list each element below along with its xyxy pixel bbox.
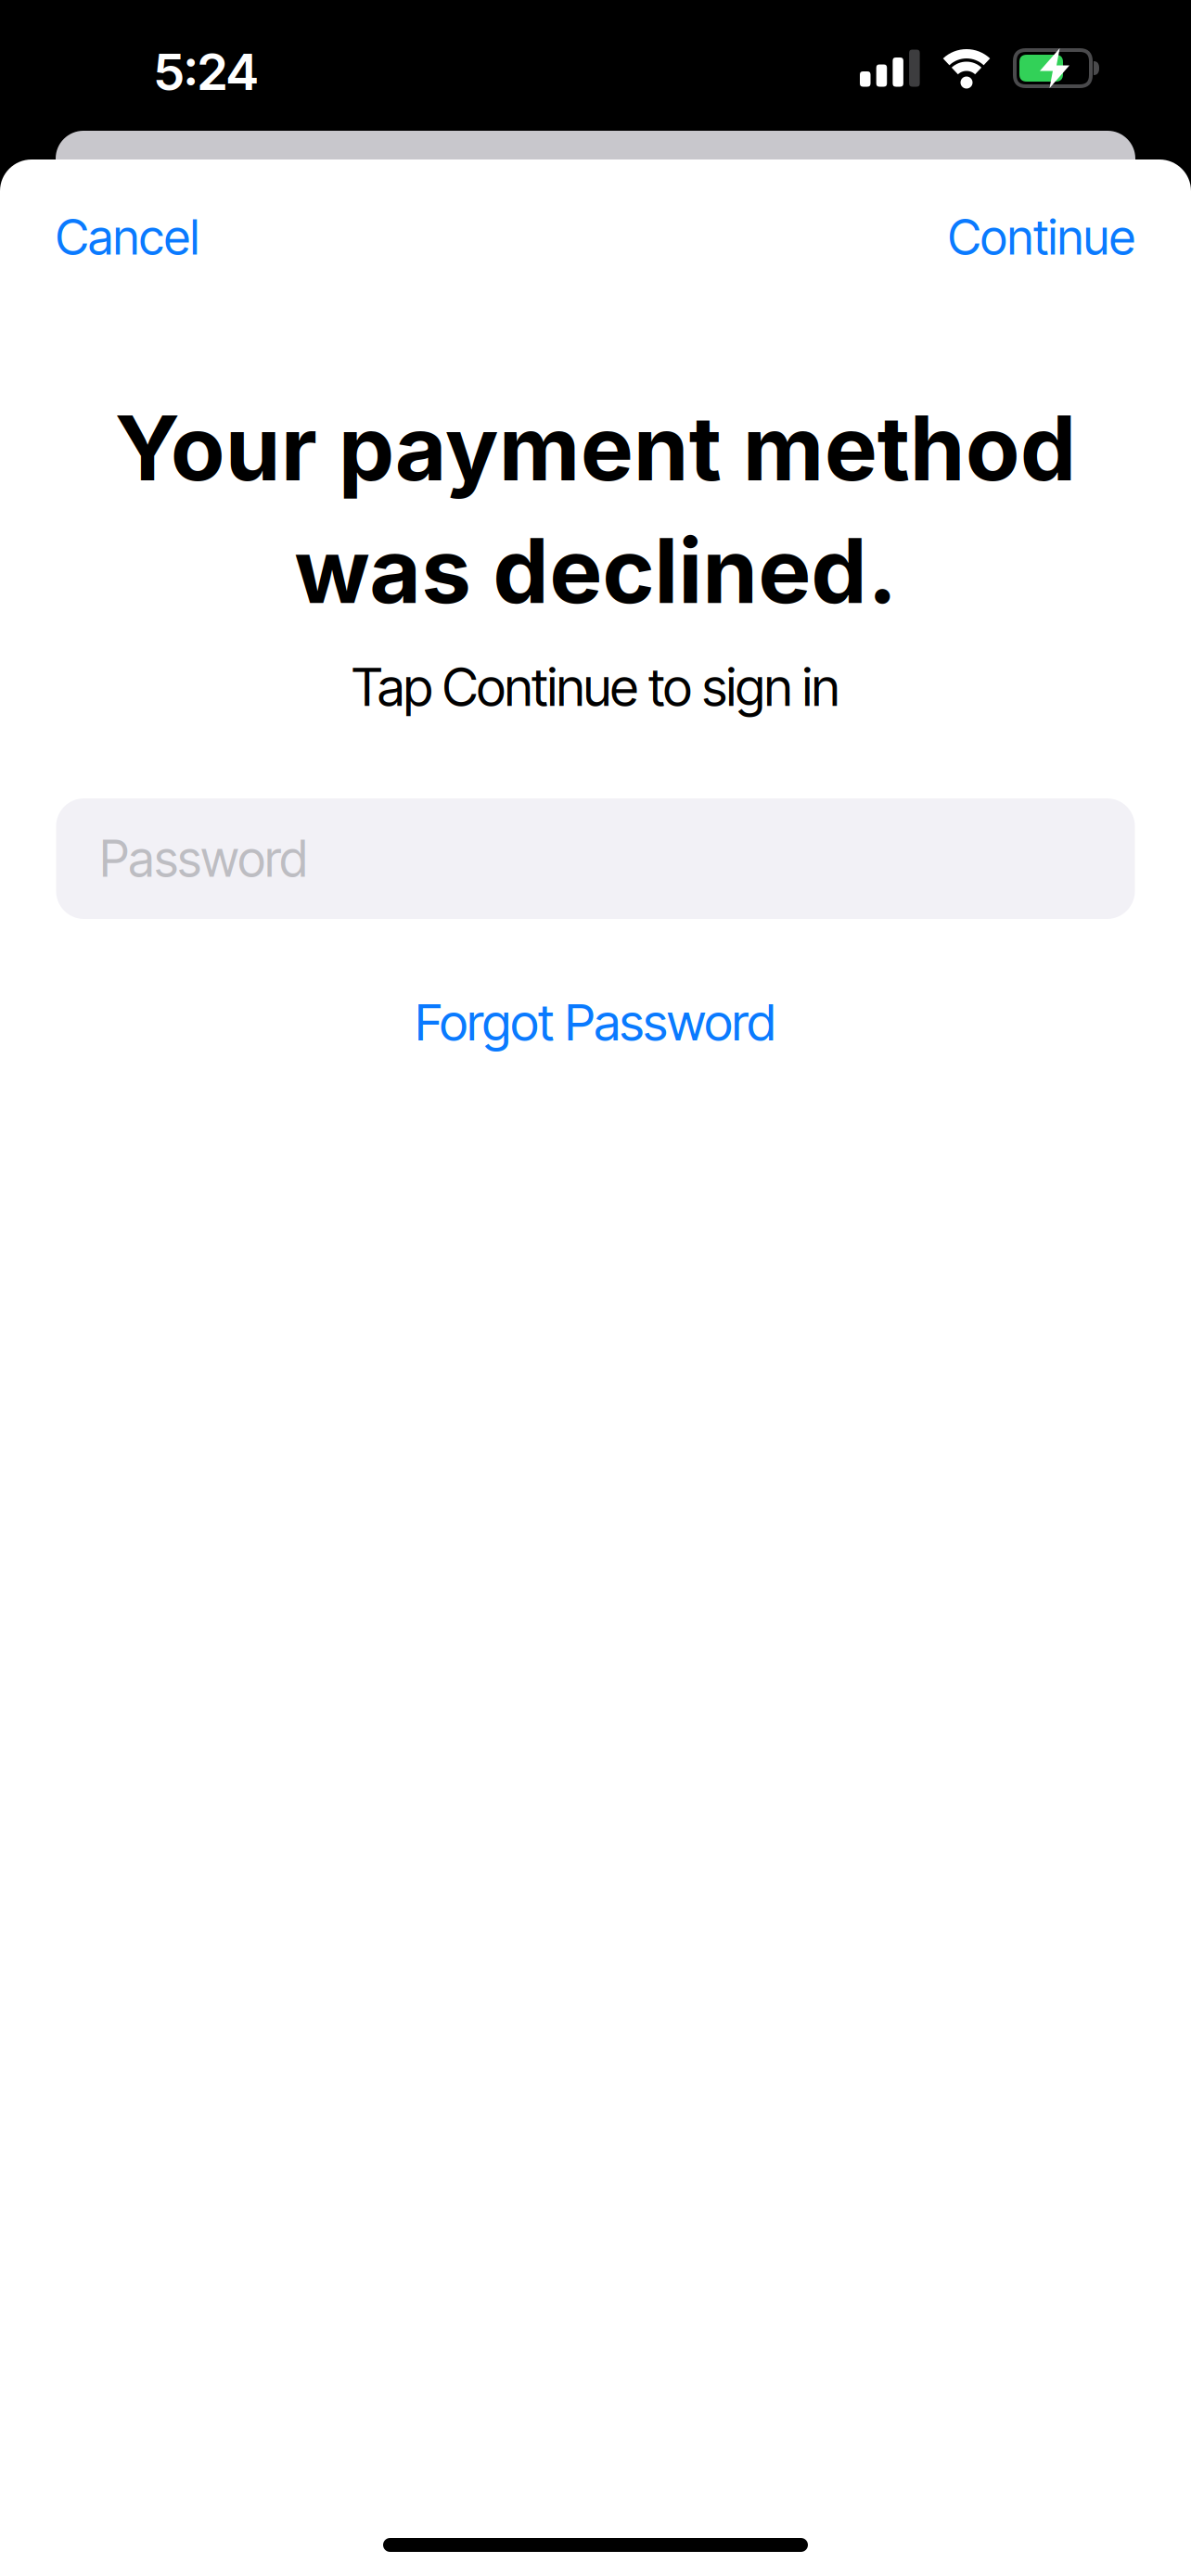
- staticText: Tap Continue to sign in: [352, 656, 839, 718]
- staticText: Cancel: [56, 208, 199, 266]
- staticText: Continue: [948, 208, 1135, 266]
- staticText: Password: [100, 829, 307, 889]
- button[interactable]: Cancel: [56, 208, 199, 266]
- staticText: Forgot Password: [415, 991, 776, 1053]
- staticText: 5:24: [154, 41, 258, 102]
- button[interactable]: Continue: [948, 208, 1135, 266]
- staticText: Your payment method was declined.: [115, 394, 1076, 624]
- button[interactable]: Forgot Password: [415, 991, 776, 1053]
